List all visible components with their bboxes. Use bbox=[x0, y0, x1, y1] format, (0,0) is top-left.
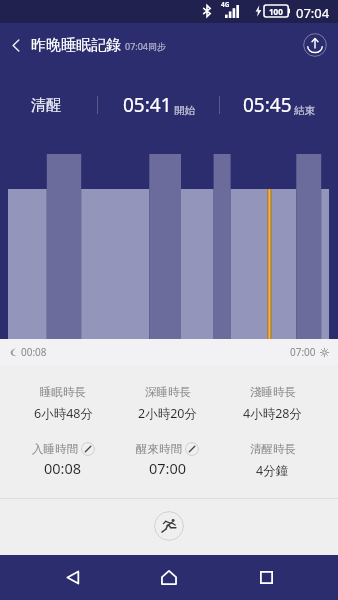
button[interactable]: Edit bbox=[81, 442, 95, 456]
staticText: 深睡時長 bbox=[145, 385, 191, 399]
button[interactable]: Back bbox=[0, 23, 31, 67]
staticText: 07:04同步 bbox=[125, 40, 167, 52]
staticText: 07:04 bbox=[296, 4, 330, 22]
staticText: 醒來時間 bbox=[136, 442, 182, 456]
staticText: 07:00 bbox=[149, 458, 187, 478]
button[interactable]: Recents bbox=[242, 555, 290, 600]
button[interactable]: Share bbox=[295, 25, 335, 65]
staticText: 2小時20分 bbox=[138, 405, 197, 422]
staticText: 結束 bbox=[294, 104, 315, 117]
staticText: 00:08 bbox=[44, 458, 82, 478]
staticText: 4G bbox=[221, 0, 230, 9]
button[interactable]: Home bbox=[145, 555, 193, 600]
button[interactable]: Back bbox=[49, 555, 97, 600]
staticText: 清醒 bbox=[31, 96, 61, 115]
staticText: 07:00 bbox=[290, 345, 316, 359]
staticText: 05:45 bbox=[243, 92, 292, 118]
staticText: 4分鐘 bbox=[256, 462, 289, 479]
staticText: 100 bbox=[269, 6, 283, 17]
staticText: 清醒時長 bbox=[250, 442, 296, 456]
button[interactable]: Activity bbox=[154, 511, 184, 541]
staticText: 4小時28分 bbox=[243, 405, 302, 422]
staticText: 00:08 bbox=[21, 345, 47, 359]
staticText: 睡眠時長 bbox=[40, 385, 86, 399]
staticText: 05:41 bbox=[123, 92, 172, 118]
staticText: 開始 bbox=[174, 104, 195, 117]
staticText: 淺睡時長 bbox=[250, 385, 296, 399]
staticText: 昨晚睡眠記錄 bbox=[31, 36, 121, 55]
staticText: 6小時48分 bbox=[34, 405, 93, 422]
staticText: 入睡時間 bbox=[32, 442, 78, 456]
button[interactable]: Edit bbox=[185, 442, 199, 456]
